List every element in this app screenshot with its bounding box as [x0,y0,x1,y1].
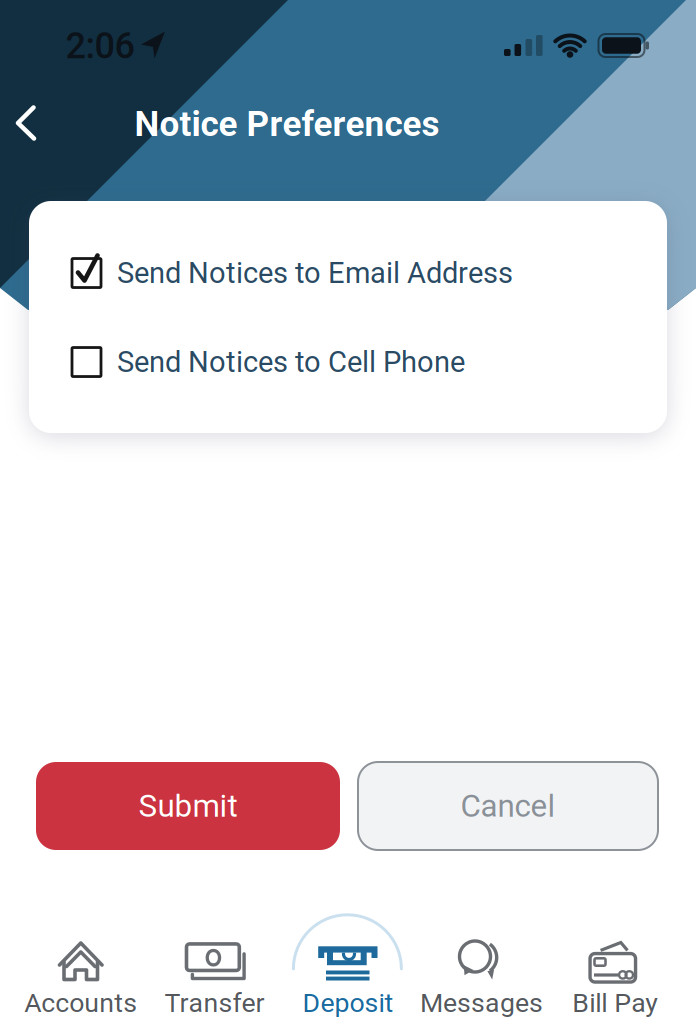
staticText: 2:06 [65,25,134,67]
staticText: Cancel [460,788,555,824]
staticText: Notice Preferences [134,103,439,145]
button[interactable]: Send Notices to Email Address [72,256,513,290]
button[interactable]: Cancel [358,762,658,850]
staticText: Accounts [24,987,137,1019]
staticText: Transfer [164,987,264,1019]
staticText: Deposit [302,987,393,1019]
staticText: Bill Pay [572,987,658,1019]
button[interactable]: Messages [415,920,548,1024]
staticText: Submit [138,788,237,824]
button[interactable]: Back [0,90,62,156]
button[interactable]: Send Notices to Cell Phone [72,345,465,379]
button[interactable]: Accounts [14,920,148,1024]
staticText: Messages [420,987,543,1019]
staticText: Send Notices to Cell Phone [117,345,465,379]
button[interactable]: Transfer [148,920,281,1024]
button[interactable]: Bill Pay [548,920,682,1024]
button[interactable]: Submit [36,762,340,850]
staticText: Send Notices to Email Address [117,256,513,290]
button[interactable]: Deposit [281,920,415,1024]
